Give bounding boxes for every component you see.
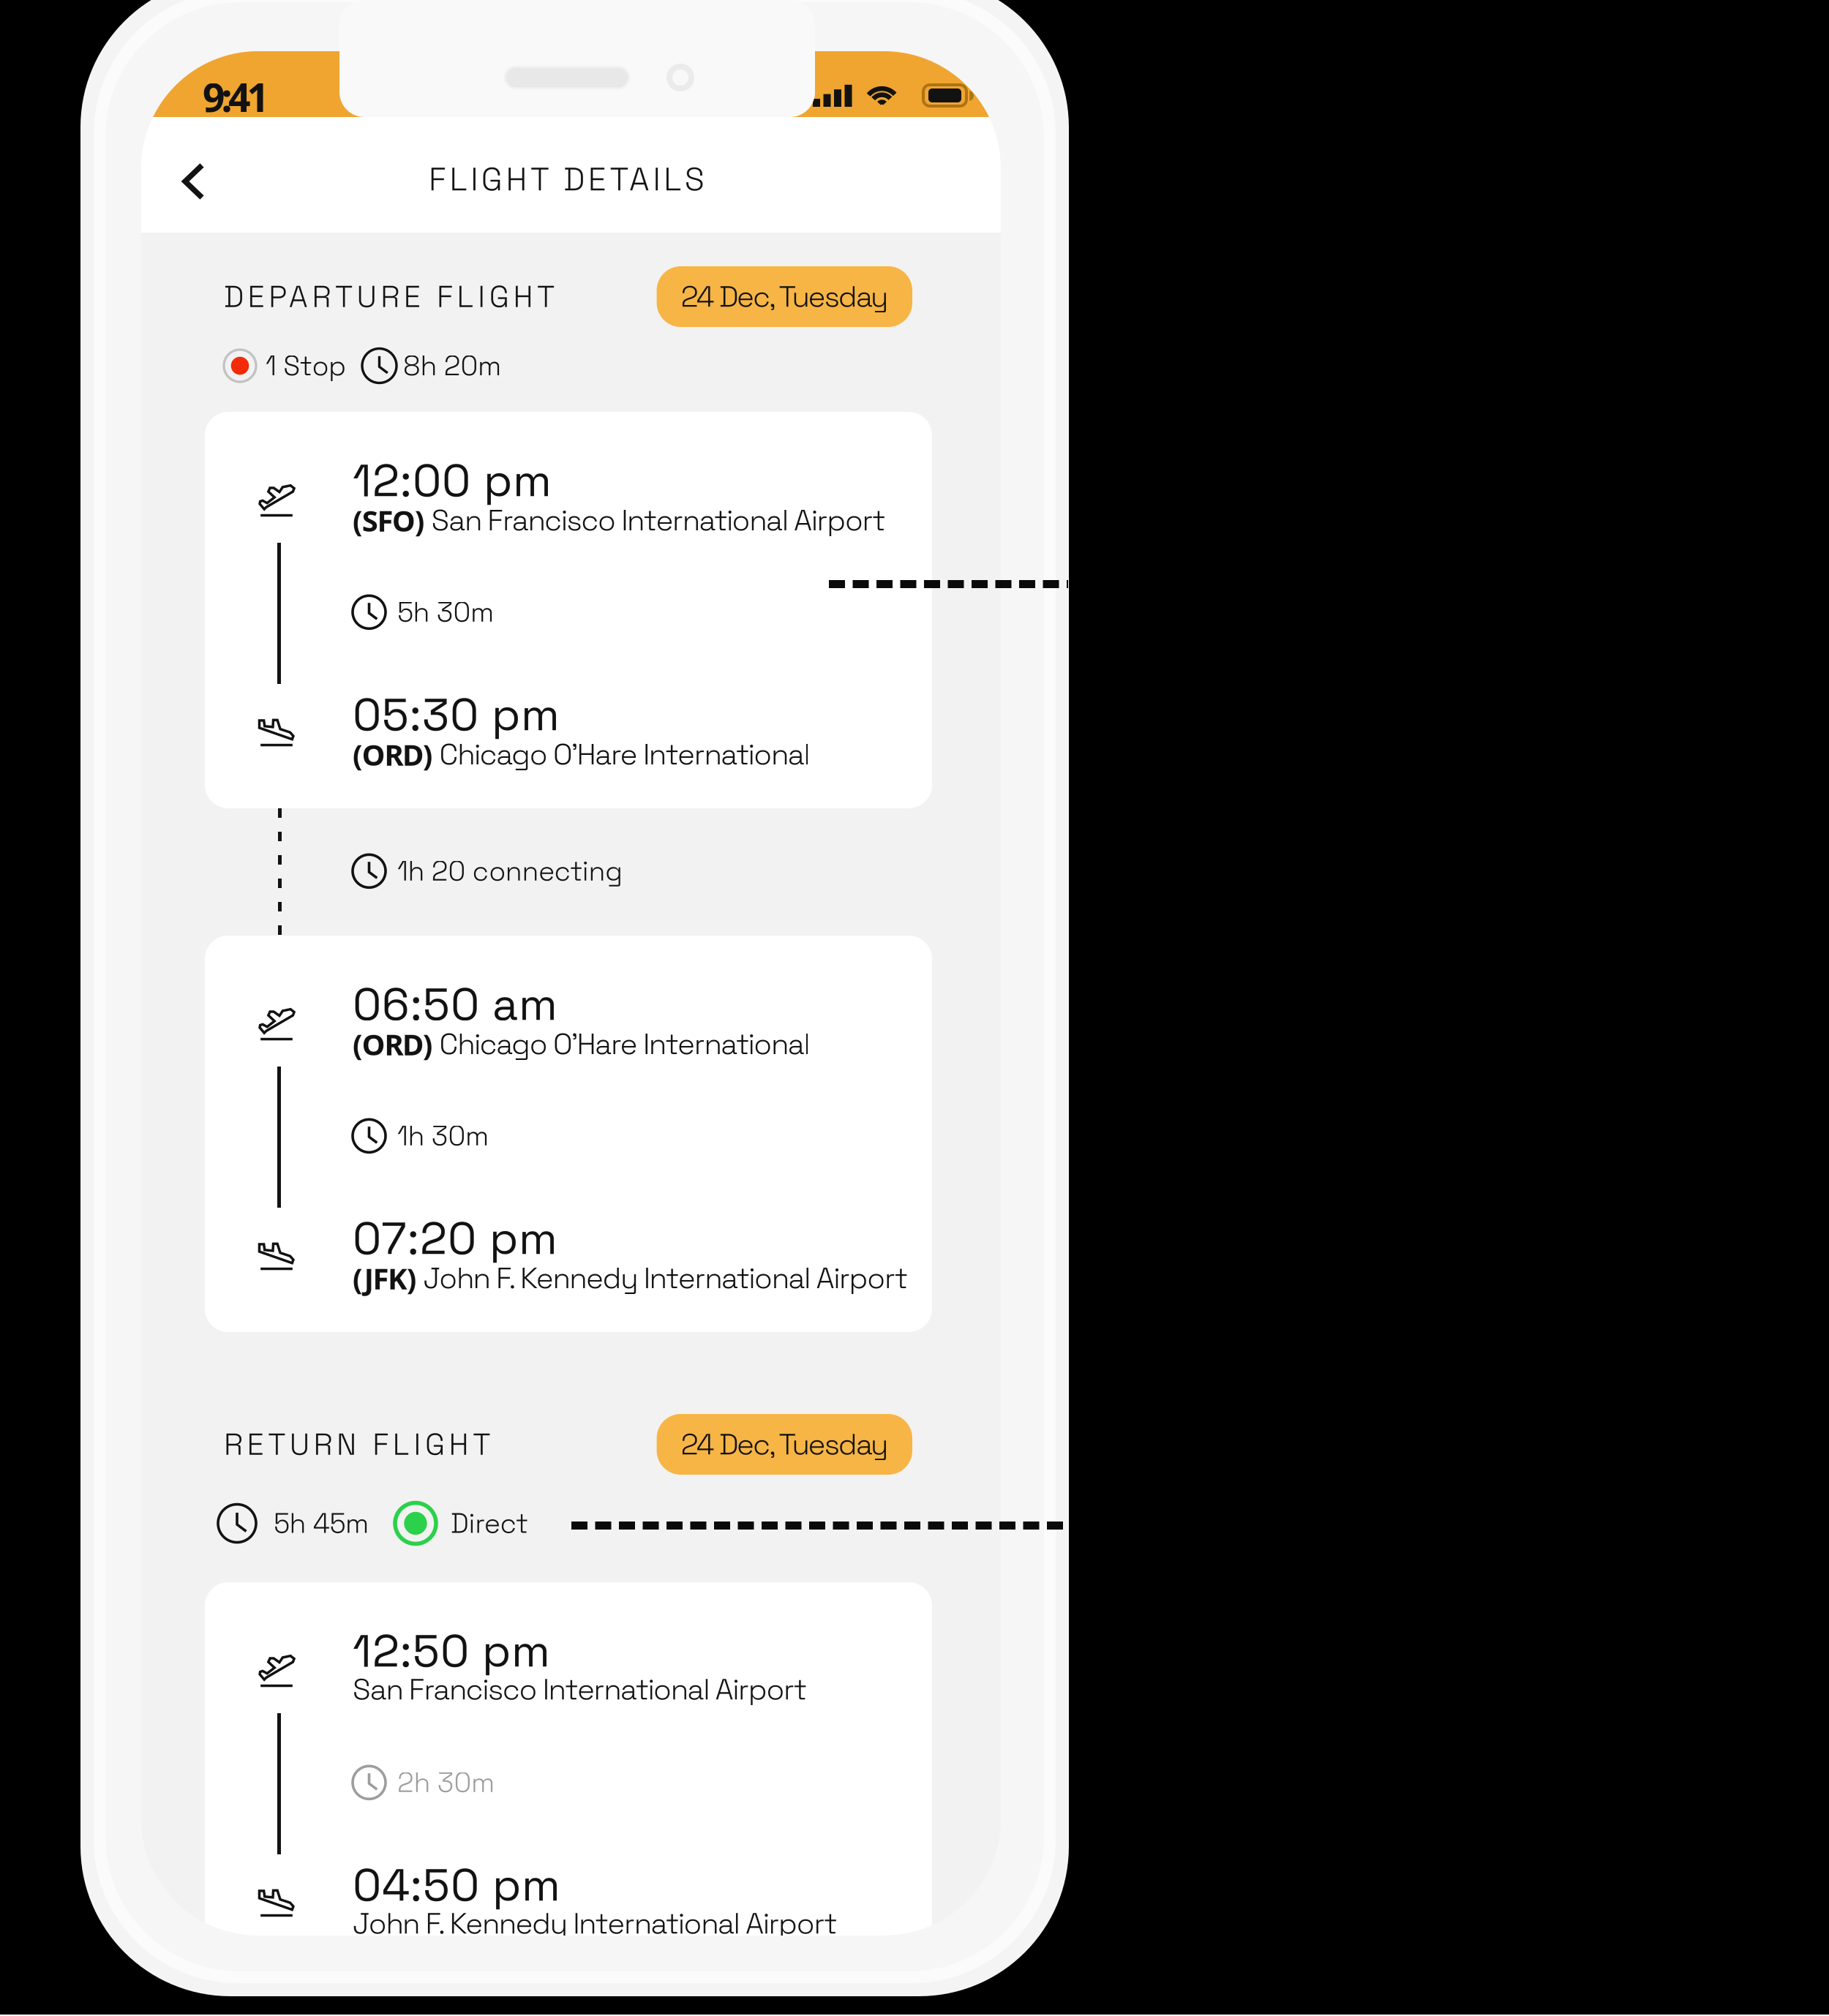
- staticText: 1h 20 connecting: [397, 854, 623, 888]
- staticText: (ORD): [353, 734, 439, 774]
- staticText: San Francisco International Airport: [353, 1671, 807, 1708]
- staticText: 1 Stop: [266, 348, 346, 383]
- staticText: RETURN FLIGHT: [224, 1425, 490, 1464]
- staticText: 5h 45m: [274, 1506, 369, 1541]
- staticText: 24 Dec, Tuesday: [681, 1426, 888, 1463]
- staticText: San Francisco International Airport: [431, 502, 885, 539]
- button[interactable]: 24 Dec, Tuesday: [657, 1414, 912, 1475]
- staticText: 07:20 pm: [353, 1210, 557, 1267]
- staticText: 04:50 pm: [353, 1857, 560, 1914]
- staticText: (ORD): [353, 1024, 439, 1064]
- staticText: Chicago O'Hare International: [439, 736, 810, 773]
- staticText: 9:41: [203, 70, 270, 123]
- staticText: 1h 30m: [397, 1118, 489, 1153]
- button[interactable]: Back: [162, 143, 225, 219]
- staticText: 8h 20m: [403, 348, 501, 383]
- staticText: DEPARTURE FLIGHT: [224, 277, 555, 316]
- staticText: 12:50 pm: [353, 1622, 550, 1680]
- staticText: (SFO): [353, 500, 431, 540]
- staticText: 12:00 pm: [353, 452, 552, 509]
- staticText: 05:30 pm: [353, 686, 560, 743]
- staticText: (JFK): [353, 1258, 423, 1298]
- staticText: 5h 30m: [397, 595, 494, 630]
- staticText: 24 Dec, Tuesday: [681, 278, 888, 315]
- staticText: 2h 30m: [397, 1765, 495, 1800]
- staticText: 06:50 am: [353, 976, 557, 1033]
- staticText: John F. Kennedy International Airport: [353, 1905, 837, 1942]
- staticText: FLIGHT DETAILS: [429, 159, 704, 200]
- staticText: Direct: [451, 1506, 528, 1541]
- staticText: Chicago O'Hare International: [439, 1025, 810, 1063]
- staticText: John F. Kennedy International Airport: [423, 1259, 908, 1297]
- button[interactable]: 24 Dec, Tuesday: [657, 266, 912, 327]
